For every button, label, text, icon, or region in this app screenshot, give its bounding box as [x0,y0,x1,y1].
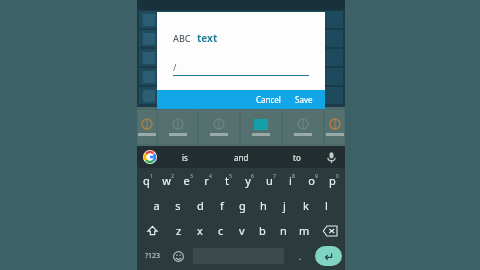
button[interactable] [138,110,156,144]
staticText: w [162,173,171,188]
button[interactable]: . [288,245,312,267]
staticText: p [329,173,336,188]
button[interactable]: y [239,168,260,193]
button[interactable]: Voice input [325,151,338,164]
button[interactable]: m [294,218,315,243]
staticText: e [183,173,190,188]
button[interactable]: h [253,193,274,218]
button[interactable] [139,49,343,66]
button[interactable] [139,30,343,47]
staticText: text [197,31,218,45]
button[interactable]: Google [143,150,157,164]
button[interactable]: r [198,168,218,193]
button[interactable]: Shift [137,218,168,243]
staticText: r [204,173,209,188]
staticText: 3 [190,173,193,180]
button[interactable]: f [211,193,232,218]
button[interactable]: k [295,193,316,218]
staticText: 6 [251,173,254,180]
button[interactable] [139,11,343,28]
staticText: s [175,198,181,213]
button[interactable] [139,87,343,104]
staticText: 9 [315,173,318,180]
staticText: ABC [173,32,191,44]
staticText: i [289,173,292,188]
staticText: y [245,173,251,188]
staticText: u [266,173,273,188]
staticText: 8 [292,173,295,180]
button[interactable]: n [273,218,294,243]
staticText: o [308,173,315,188]
button[interactable]: g [232,193,253,218]
staticText: f [220,198,224,213]
staticText: . [299,250,302,262]
staticText: Save [295,94,313,105]
button[interactable]: a [145,193,167,218]
staticText: x [197,223,203,238]
staticText: to [293,152,301,163]
staticText: / [173,61,177,73]
staticText: Cancel [256,94,281,105]
button[interactable] [283,110,323,144]
button[interactable]: t [218,168,239,193]
button[interactable] [199,110,239,144]
staticText: m [299,223,310,238]
staticText: t [225,173,229,188]
button[interactable] [325,110,344,144]
staticText: 7 [273,173,276,180]
button[interactable]: x [189,218,210,243]
button[interactable]: d [189,193,211,218]
staticText: k [303,198,309,213]
staticText: is [182,152,188,163]
button[interactable]: c [210,218,231,243]
staticText: 2 [171,173,174,180]
staticText: ?123 [145,251,161,261]
button[interactable]: s [167,193,189,218]
button[interactable] [241,110,281,144]
button[interactable]: b [252,218,273,243]
button[interactable]: z [168,218,189,243]
staticText: z [176,223,182,238]
button[interactable]: p [323,168,344,193]
button[interactable]: q [138,168,158,193]
button[interactable] [139,68,343,85]
staticText: b [259,223,266,238]
button[interactable]: j [274,193,295,218]
staticText: h [260,198,267,213]
button[interactable]: Emoji [168,245,189,267]
staticText: 5 [229,173,232,180]
button[interactable]: o [302,168,323,193]
staticText: c [218,223,224,238]
staticText: 1 [150,173,153,180]
staticText: d [197,198,204,213]
button[interactable]: v [231,218,252,243]
staticText: n [280,223,287,238]
staticText: q [143,173,150,188]
staticText: and [234,152,249,163]
staticText: j [283,198,286,213]
button[interactable]: ?123 [137,245,168,267]
staticText: 4 [209,173,212,180]
button[interactable]: i [281,168,302,193]
staticText: l [325,198,328,213]
staticText: 0 [336,173,339,180]
button[interactable]: Enter [315,246,342,266]
staticText: a [153,198,160,213]
staticText: v [239,223,245,238]
button[interactable]: Save [288,90,325,109]
button[interactable]: to [269,146,325,168]
button[interactable]: e [178,168,198,193]
button[interactable]: is [157,146,213,168]
button[interactable]: l [316,193,337,218]
button[interactable]: Cancel [249,90,288,109]
button[interactable]: and [213,146,269,168]
button[interactable]: Backspace [315,218,345,243]
button[interactable]: w [158,168,178,193]
button[interactable]: / [173,60,309,76]
button[interactable]: u [260,168,281,193]
staticText: g [239,198,246,213]
button[interactable] [158,110,197,144]
